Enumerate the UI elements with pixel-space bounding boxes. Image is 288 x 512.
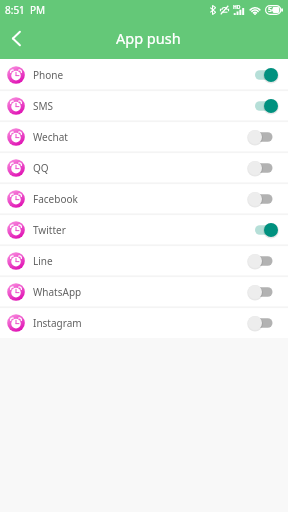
button[interactable]: On [248,66,278,84]
button[interactable]: Off [248,128,278,146]
button[interactable]: Instagram [0,307,288,338]
button[interactable]: WhatsApp [0,276,288,307]
button[interactable]: Back [0,19,32,57]
button[interactable]: Off [248,283,278,301]
staticText: 8:51 PM [5,3,46,17]
button[interactable]: SMS [0,90,288,121]
button[interactable]: Wechat [0,121,288,152]
button[interactable]: Off [248,314,278,332]
button[interactable]: Line [0,245,288,276]
staticText: 54 [268,5,277,15]
staticText: Line [33,254,53,268]
button[interactable]: On [248,97,278,115]
button[interactable]: Off [248,190,278,208]
button[interactable]: QQ [0,152,288,183]
button[interactable]: Off [248,159,278,177]
button[interactable]: On [248,221,278,239]
staticText: Wechat [33,130,68,144]
staticText: Phone [33,68,64,82]
staticText: HD [233,4,241,11]
staticText: Twitter [33,223,66,237]
button[interactable]: Facebook [0,183,288,214]
staticText: WhatsApp [33,285,82,299]
staticText: Instagram [33,316,82,330]
staticText: Facebook [33,192,78,206]
button[interactable]: Off [248,252,278,270]
staticText: App push [116,28,181,48]
staticText: QQ [33,161,49,175]
button[interactable]: Phone [0,59,288,90]
staticText: SMS [33,99,54,113]
button[interactable]: Twitter [0,214,288,245]
